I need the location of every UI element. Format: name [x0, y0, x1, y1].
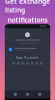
staticText: Get exchange listing: [5, 0, 50, 14]
staticText: 9:41: [40, 24, 47, 28]
staticText: notifications: [7, 15, 47, 24]
staticText: Share This Article: [16, 56, 39, 60]
